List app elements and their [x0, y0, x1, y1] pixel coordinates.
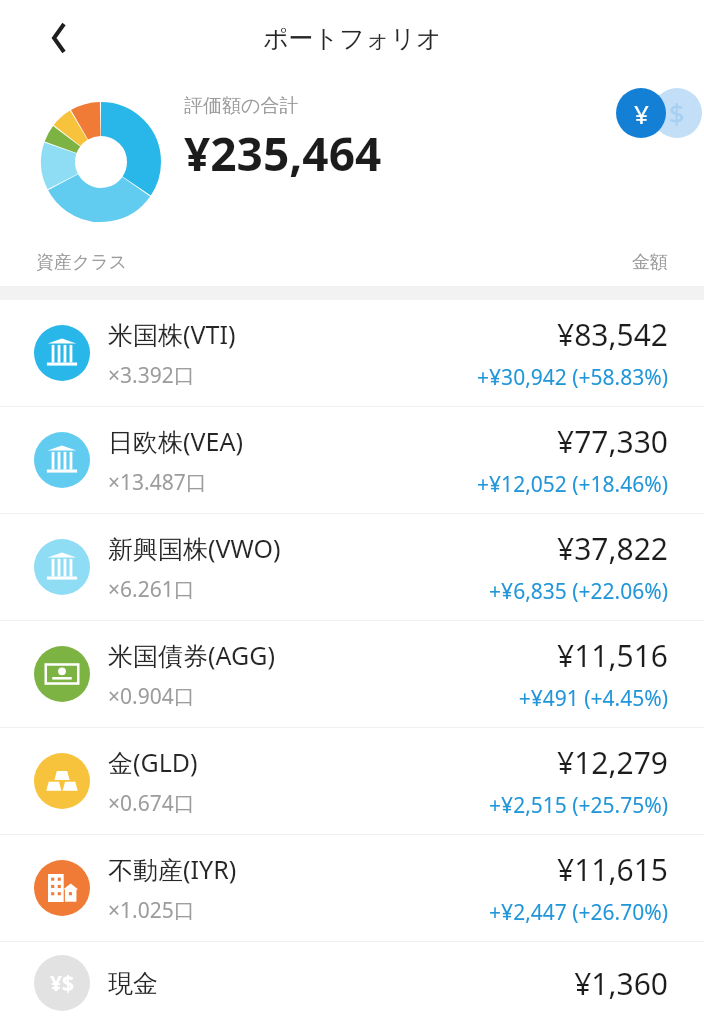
- button[interactable]: 不動産(IYR): [0, 835, 704, 941]
- staticText: ×1.025口: [108, 896, 195, 925]
- staticText: +¥2,447 (+26.70%): [489, 898, 668, 927]
- staticText: +¥2,515 (+25.75%): [489, 791, 668, 820]
- staticText: 金額: [632, 251, 668, 274]
- staticText: 現金: [108, 968, 158, 999]
- staticText: ¥77,330: [557, 421, 668, 462]
- button[interactable]: Back: [34, 13, 84, 63]
- button[interactable]: ¥$: [0, 942, 704, 1024]
- staticText: ×3.392口: [108, 361, 195, 390]
- staticText: +¥30,942 (+58.83%): [477, 363, 668, 392]
- staticText: ポートフォリオ: [263, 23, 442, 54]
- button[interactable]: 新興国株(VWO): [0, 514, 704, 620]
- staticText: +¥6,835 (+22.06%): [489, 577, 668, 606]
- staticText: ¥: [634, 96, 649, 131]
- staticText: 評価額の合計: [184, 94, 299, 118]
- staticText: ¥12,279: [557, 742, 668, 783]
- staticText: 不動産(IYR): [108, 852, 237, 886]
- staticText: ¥11,615: [557, 849, 668, 890]
- button[interactable]: 米国株(VTI): [0, 300, 704, 406]
- staticText: $: [669, 95, 685, 132]
- staticText: ×0.674口: [108, 789, 195, 818]
- staticText: 米国株(VTI): [108, 317, 236, 351]
- button[interactable]: 日欧株(VEA): [0, 407, 704, 513]
- button[interactable]: 米国債券(AGG): [0, 621, 704, 727]
- staticText: ¥235,464: [184, 122, 382, 185]
- staticText: ¥$: [50, 969, 75, 998]
- staticText: ¥37,822: [557, 528, 668, 569]
- staticText: ×6.261口: [108, 575, 195, 604]
- staticText: 米国債券(AGG): [108, 638, 275, 672]
- staticText: 資産クラス: [36, 251, 128, 274]
- staticText: ¥83,542: [557, 314, 668, 355]
- staticText: ¥1,360: [574, 963, 668, 1004]
- staticText: ×0.904口: [108, 682, 195, 711]
- staticText: +¥12,052 (+18.46%): [477, 470, 668, 499]
- button[interactable]: Japanese Yen: [616, 88, 666, 138]
- staticText: ¥11,516: [557, 635, 668, 676]
- button[interactable]: US Dollar: [652, 88, 702, 138]
- button[interactable]: 金(GLD): [0, 728, 704, 834]
- staticText: 新興国株(VWO): [108, 531, 281, 565]
- staticText: 金(GLD): [108, 745, 198, 779]
- staticText: 日欧株(VEA): [108, 424, 243, 458]
- staticText: +¥491 (+4.45%): [518, 684, 668, 713]
- staticText: ×13.487口: [108, 468, 207, 497]
